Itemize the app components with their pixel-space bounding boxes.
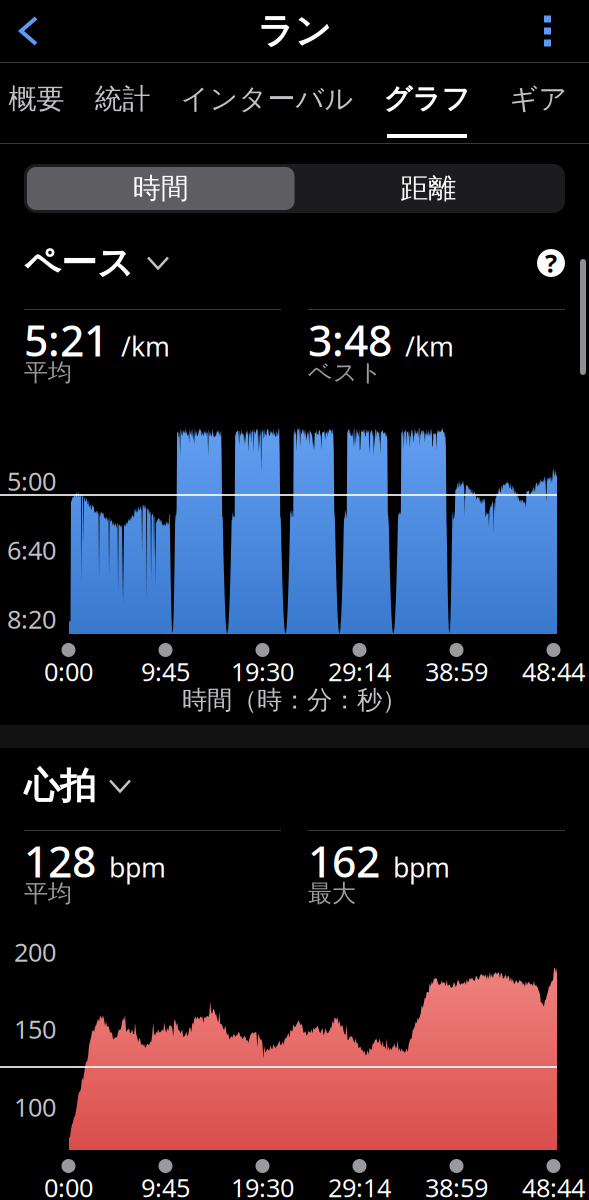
staticText: ベスト [308, 358, 383, 387]
staticText: 0:00 [44, 1171, 93, 1200]
staticText: 29:14 [328, 655, 391, 688]
button[interactable]: More options [522, 0, 589, 62]
staticText: グラフ [383, 82, 470, 116]
staticText: 心拍 [24, 764, 96, 808]
staticText: /km [405, 328, 454, 364]
staticText: 128 [24, 833, 96, 889]
staticText: 平均 [24, 879, 72, 908]
staticText: 最大 [308, 879, 356, 908]
staticText: 平均 [24, 358, 72, 387]
staticText: 0:00 [44, 655, 93, 688]
button[interactable]: グラフ [362, 63, 492, 143]
staticText: 5:21 [24, 312, 108, 368]
staticText: bpm [109, 849, 166, 885]
button[interactable]: ギア [492, 63, 585, 143]
staticText: ペース [24, 241, 134, 285]
button[interactable]: 心拍 [24, 769, 130, 803]
staticText: bpm [393, 849, 450, 885]
staticText: 38:59 [425, 655, 488, 688]
button[interactable]: 概要 [0, 63, 73, 143]
staticText: 200 [14, 935, 56, 969]
staticText: 29:14 [328, 1171, 391, 1200]
staticText: 時間 [133, 171, 189, 206]
staticText: 6:40 [7, 533, 56, 567]
staticText: 9:45 [141, 1171, 190, 1200]
staticText: 19:30 [231, 655, 294, 688]
staticText: /km [121, 328, 170, 364]
staticText: 9:45 [141, 655, 190, 688]
staticText: 19:30 [231, 1171, 294, 1200]
staticText: ラン [257, 9, 331, 53]
staticText: 48:44 [522, 655, 585, 688]
staticText: 3:48 [308, 312, 392, 368]
staticText: 48:44 [522, 1171, 585, 1200]
staticText: 統計 [94, 82, 150, 116]
button[interactable]: Help [537, 246, 565, 280]
button[interactable]: ペース [24, 246, 168, 280]
staticText: インターバル [180, 82, 353, 116]
staticText: ギア [509, 82, 567, 116]
button[interactable]: 距離 [294, 167, 562, 210]
button[interactable]: インターバル [172, 63, 362, 143]
staticText: 150 [14, 1012, 56, 1046]
staticText: ? [545, 246, 557, 280]
staticText: 8:20 [7, 602, 56, 636]
button[interactable]: Back [0, 0, 57, 62]
staticText: 概要 [8, 82, 64, 116]
staticText: 距離 [400, 171, 456, 206]
staticText: 100 [14, 1090, 56, 1124]
staticText: 162 [308, 833, 380, 889]
button[interactable]: 統計 [73, 63, 172, 143]
staticText: 5:00 [7, 464, 56, 498]
button[interactable]: 時間 [27, 167, 294, 210]
staticText: 38:59 [425, 1171, 488, 1200]
staticText: 時間（時：分：秒） [182, 684, 407, 715]
